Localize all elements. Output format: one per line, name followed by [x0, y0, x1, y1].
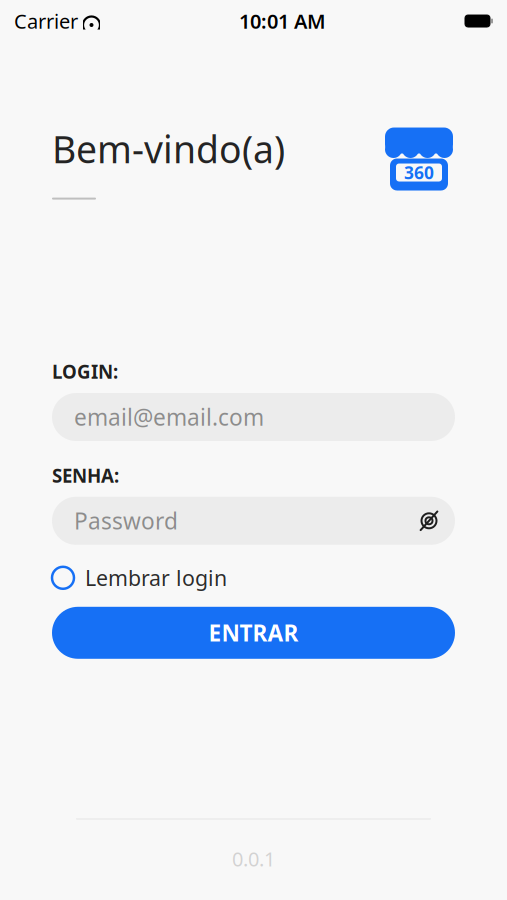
staticText: Bem-vindo(a) [52, 124, 285, 174]
staticText: LOGIN: [52, 359, 118, 384]
staticText: Lembrar login [85, 564, 227, 592]
staticText: SENHA: [52, 463, 119, 488]
staticText: 360 [404, 161, 434, 184]
button[interactable]: Lembrar login [52, 561, 455, 595]
staticText: 10:01 AM [239, 8, 326, 34]
staticText: email@email.com [74, 402, 264, 432]
staticText: Carrier [14, 8, 78, 34]
staticText: 0.0.1 [232, 845, 275, 872]
staticText: Password [74, 506, 178, 536]
button[interactable]: Show password [409, 499, 449, 543]
button[interactable]: ENTRAR [52, 607, 455, 659]
staticText: ENTRAR [208, 618, 298, 648]
